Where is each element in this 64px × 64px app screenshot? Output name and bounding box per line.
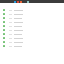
button[interactable]: Item icon [0, 44, 64, 48]
button[interactable]: Item icon [0, 16, 64, 20]
button[interactable]: Item icon [0, 36, 64, 40]
button[interactable]: Item icon [0, 40, 64, 44]
button[interactable]: Item icon [0, 24, 64, 28]
other: Item icon [3, 29, 5, 31]
other: Item icon [3, 37, 5, 39]
button[interactable]: Item icon [0, 8, 64, 12]
button[interactable]: Item icon [0, 12, 64, 16]
other: Item icon [3, 13, 5, 15]
other: Item icon [3, 33, 5, 35]
other: Item icon [3, 25, 5, 27]
other: Item icon [3, 45, 5, 47]
other: Item icon [3, 41, 5, 43]
button[interactable]: Item icon [0, 28, 64, 32]
button[interactable]: Item icon [0, 20, 64, 24]
button[interactable]: Item icon [0, 32, 64, 36]
other: Item icon [3, 9, 5, 11]
other: Item icon [3, 21, 5, 23]
other: Item icon [3, 17, 5, 19]
